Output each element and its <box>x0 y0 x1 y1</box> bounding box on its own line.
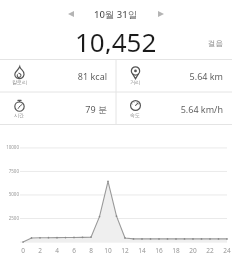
staticText: 거리 <box>130 79 140 85</box>
button[interactable]: Next day <box>152 5 170 23</box>
staticText: 81 kcal <box>77 70 107 82</box>
staticText: 10월 31일 <box>94 8 138 21</box>
staticText: 20 <box>186 246 200 255</box>
staticText: 8 <box>84 246 98 255</box>
button[interactable]: 시간 <box>0 92 116 125</box>
staticText: 칼로리 <box>12 79 27 85</box>
staticText: 5.64 km <box>189 70 223 82</box>
staticText: 22 <box>203 246 217 255</box>
staticText: 4 <box>50 246 64 255</box>
button[interactable]: 10월 31일 <box>92 8 140 21</box>
button[interactable]: 거리 <box>116 59 232 92</box>
staticText: 10000 <box>0 144 19 150</box>
staticText: 5.64 km/h <box>180 103 223 115</box>
staticText: 속도 <box>130 112 140 118</box>
staticText: 2 <box>33 246 47 255</box>
staticText: 18 <box>169 246 183 255</box>
staticText: 0 <box>16 246 30 255</box>
staticText: 24 <box>220 246 232 255</box>
staticText: 걸음 <box>208 39 223 48</box>
staticText: 10,452 <box>75 24 157 54</box>
staticText: 14 <box>135 246 149 255</box>
staticText: 10 <box>101 246 115 255</box>
staticText: 7500 <box>0 168 19 174</box>
staticText: 16 <box>152 246 166 255</box>
staticText: 6 <box>67 246 81 255</box>
button[interactable]: Previous day <box>62 5 80 23</box>
staticText: 5000 <box>0 191 19 197</box>
staticText: 79 분 <box>85 103 107 115</box>
button[interactable]: 속도 <box>116 92 232 125</box>
staticText: 시간 <box>14 112 24 118</box>
staticText: 12 <box>118 246 132 255</box>
button[interactable]: 칼로리 <box>0 59 116 92</box>
staticText: 2500 <box>0 215 19 221</box>
